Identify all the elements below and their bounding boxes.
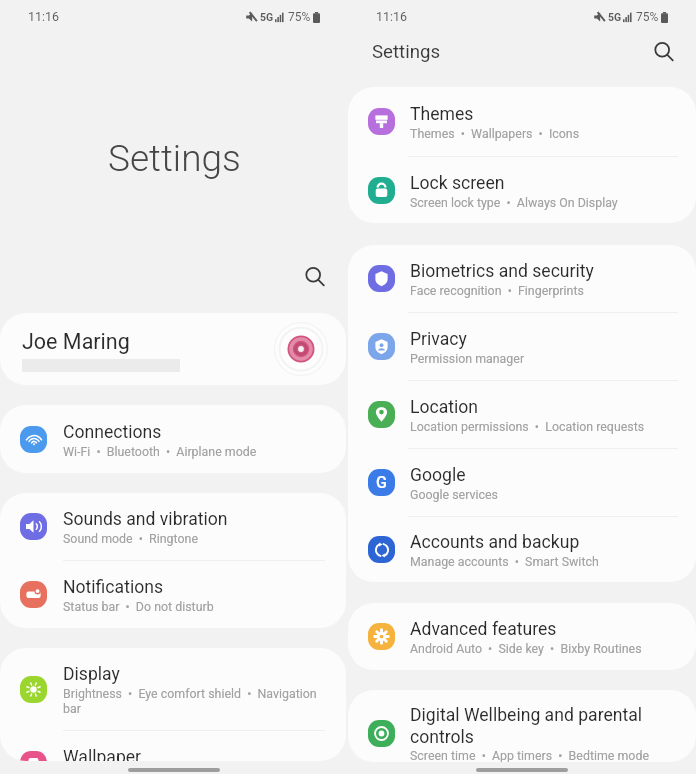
button[interactable]: Wallpaper xyxy=(0,731,346,761)
staticText: Brightness • Eye comfort shield • Naviga… xyxy=(63,686,331,716)
button[interactable]: Search xyxy=(648,36,680,68)
staticText: Permission manager xyxy=(410,351,525,366)
staticText: Advanced features xyxy=(410,619,557,640)
button[interactable]: Search xyxy=(299,261,331,293)
button[interactable]: Notifications xyxy=(0,561,346,628)
staticText: Sound mode • Ringtone xyxy=(63,531,198,546)
staticText: Google services xyxy=(410,487,498,502)
staticText: Biometrics and security xyxy=(410,261,594,282)
staticText: 5G xyxy=(608,11,622,23)
staticText: Notifications xyxy=(63,577,164,598)
button[interactable]: Location xyxy=(348,381,696,448)
staticText: Status bar • Do not disturb xyxy=(63,599,214,614)
staticText: 11:16 xyxy=(376,9,408,24)
staticText: Face recognition • Fingerprints xyxy=(410,283,584,298)
staticText: Wallpaper xyxy=(63,747,142,761)
button[interactable]: Sounds and vibration xyxy=(0,493,346,560)
staticText: Location permissions • Location requests xyxy=(410,419,645,434)
staticText: 75% xyxy=(288,10,311,24)
staticText: Themes xyxy=(410,104,474,125)
staticText: Accounts and backup xyxy=(410,532,580,553)
staticText: Screen lock type • Always On Display xyxy=(410,195,618,210)
staticText: 11:16 xyxy=(28,9,60,24)
button[interactable]: Accounts and backup xyxy=(348,517,696,582)
button[interactable]: Connections xyxy=(0,405,346,473)
staticText: Digital Wellbeing and parental controls xyxy=(410,705,658,747)
staticText: Joe Maring xyxy=(22,329,130,354)
staticText: Lock screen xyxy=(410,173,505,194)
staticText: 75% xyxy=(636,10,659,24)
staticText: Google xyxy=(410,465,466,486)
button[interactable]: Themes xyxy=(348,87,696,156)
button[interactable]: Biometrics and security xyxy=(348,245,696,312)
staticText: Screen time • App timers • Bedtime mode xyxy=(410,748,649,762)
button[interactable]: Digital Wellbeing and parental controls xyxy=(348,690,696,762)
button[interactable]: Lock screen xyxy=(348,157,696,223)
staticText: Manage accounts • Smart Switch xyxy=(410,554,599,569)
staticText: Android Auto • Side key • Bixby Routines xyxy=(410,641,642,656)
button[interactable]: Joe Maring xyxy=(0,313,346,385)
staticText: Settings xyxy=(108,137,241,180)
staticText: Location xyxy=(410,397,479,418)
staticText: G xyxy=(376,473,387,492)
staticText: Display xyxy=(63,664,120,685)
staticText: 5G xyxy=(260,11,274,23)
staticText: Connections xyxy=(63,422,162,443)
staticText: Themes • Wallpapers • Icons xyxy=(410,126,580,141)
staticText: Privacy xyxy=(410,329,467,350)
button[interactable]: Advanced features xyxy=(348,603,696,670)
staticText: Sounds and vibration xyxy=(63,509,228,530)
staticText: Settings xyxy=(372,41,441,63)
button[interactable]: G xyxy=(348,449,696,516)
button[interactable]: Privacy xyxy=(348,313,696,380)
staticText: Wi-Fi • Bluetooth • Airplane mode xyxy=(63,444,257,459)
button[interactable]: Display xyxy=(0,648,346,730)
